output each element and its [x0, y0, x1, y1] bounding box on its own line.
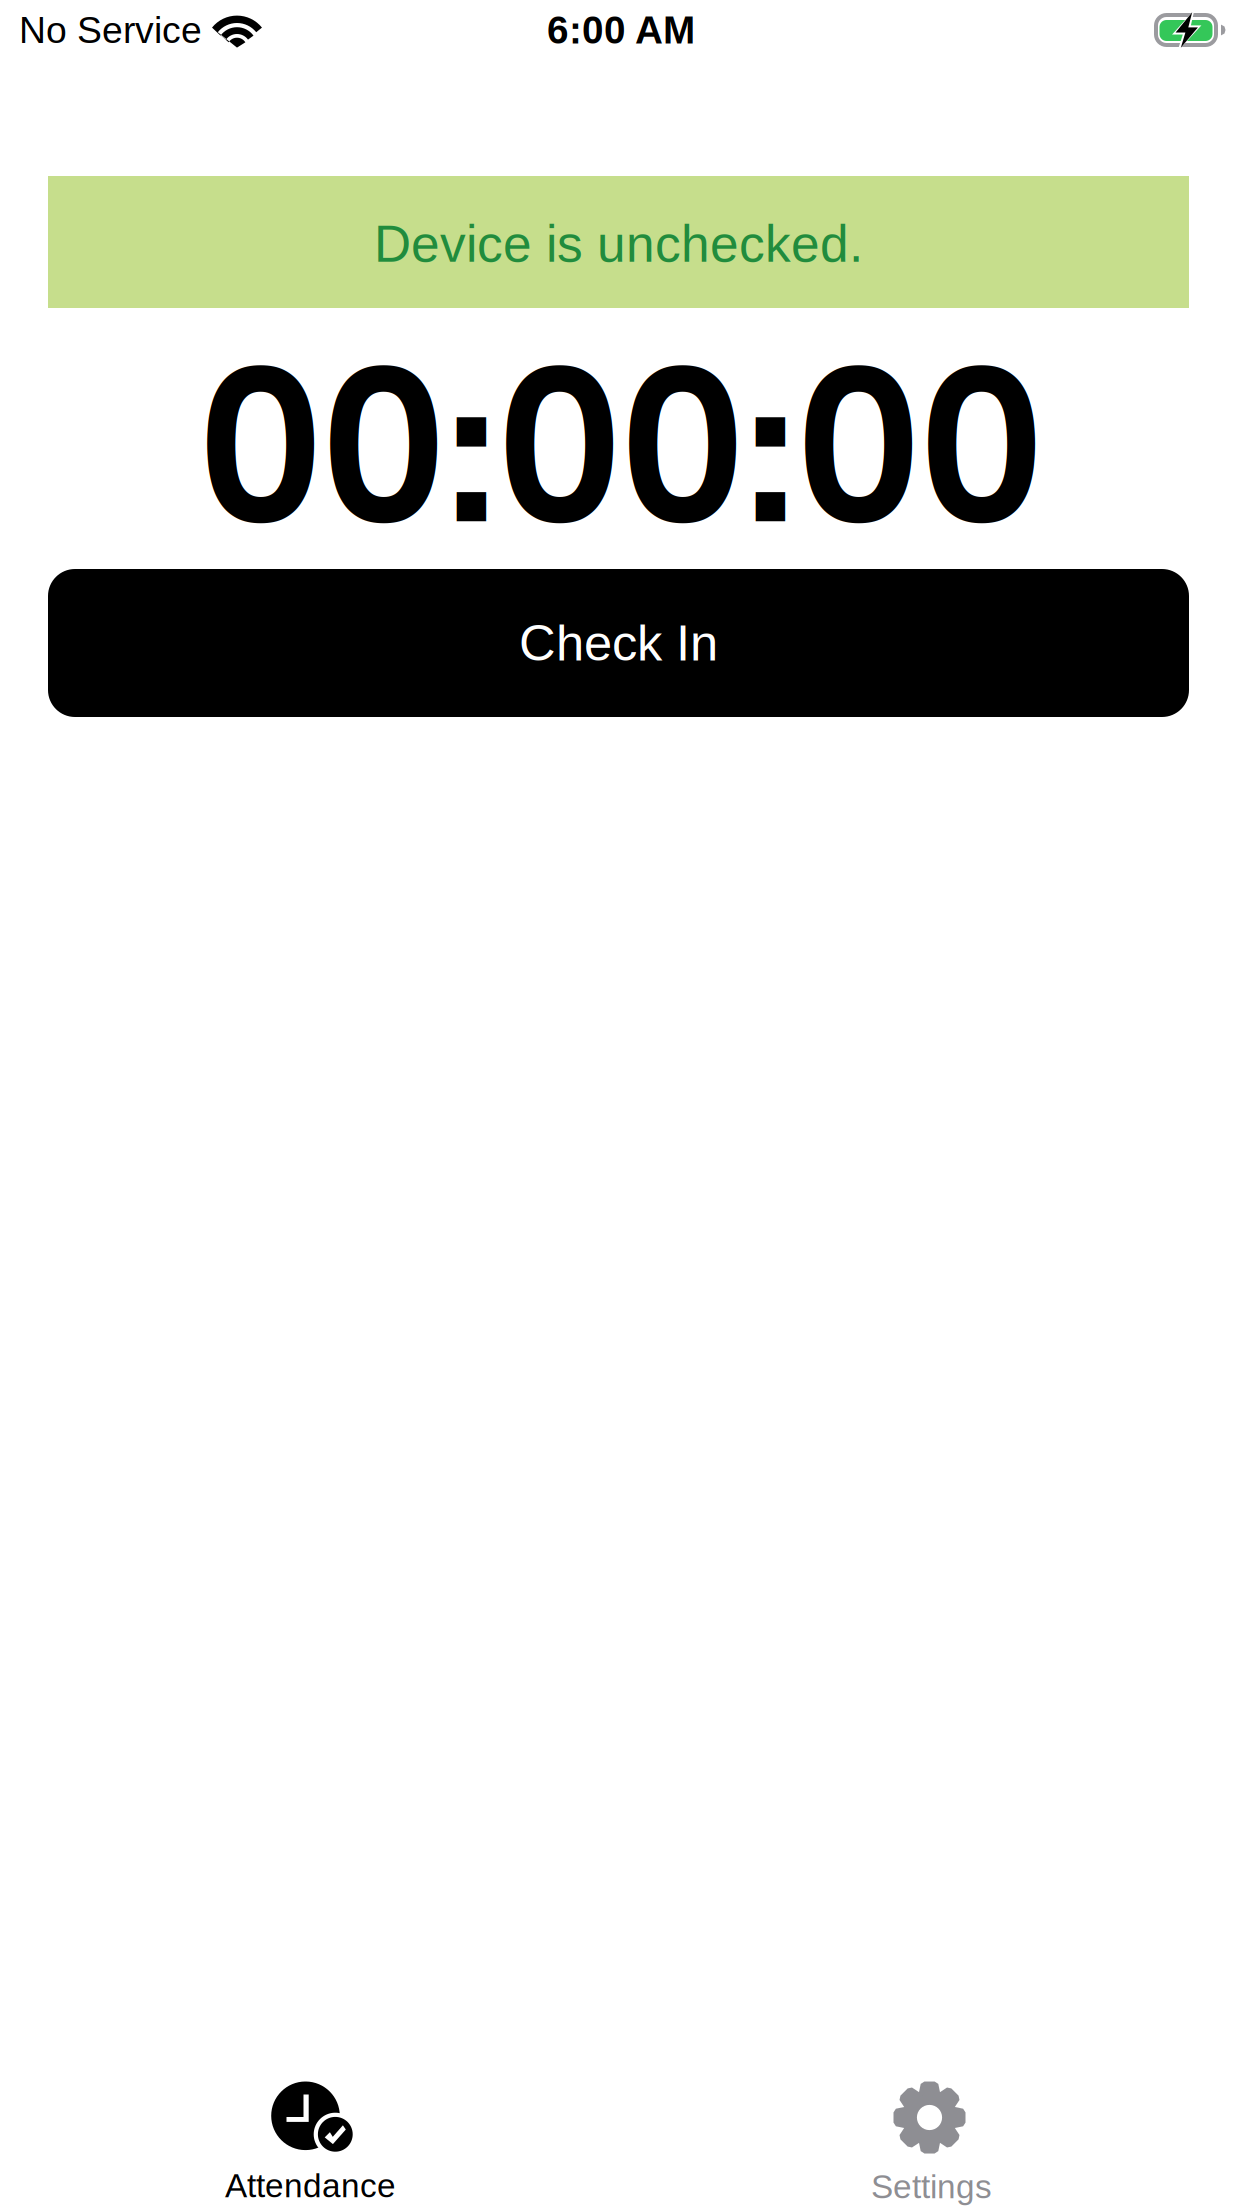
staticText: Check In	[519, 615, 718, 671]
button[interactable]: Attendance	[0, 2078, 621, 2208]
staticText: 6:00 AM	[547, 8, 695, 52]
staticText: 00:00:00	[199, 301, 1043, 588]
staticText: Attendance	[225, 2167, 396, 2204]
button[interactable]: Check In	[48, 569, 1189, 717]
staticText: Settings	[871, 2168, 992, 2205]
staticText: No Service	[19, 9, 202, 51]
staticText: Device is unchecked.	[374, 215, 863, 273]
button[interactable]: Settings	[621, 2078, 1242, 2208]
